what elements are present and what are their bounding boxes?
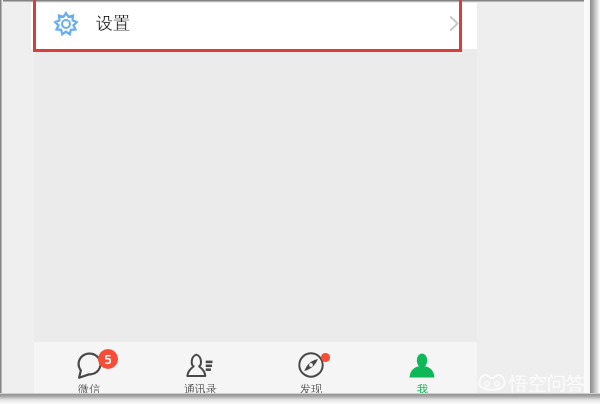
staticText: 我 (417, 382, 428, 394)
staticText: 通讯录 (184, 382, 217, 394)
staticText: 设置 (96, 13, 130, 34)
staticText: 悟空问答 (509, 372, 585, 396)
staticText: 发现 (300, 382, 322, 394)
button[interactable]: 设置 (31, 0, 477, 49)
button[interactable]: 发现 (255, 342, 366, 394)
button[interactable]: 微信 (34, 342, 144, 394)
staticText: 5 (104, 350, 112, 368)
button[interactable]: 我 (366, 342, 477, 394)
button[interactable]: 通讯录 (144, 342, 255, 394)
staticText: 微信 (78, 382, 100, 394)
